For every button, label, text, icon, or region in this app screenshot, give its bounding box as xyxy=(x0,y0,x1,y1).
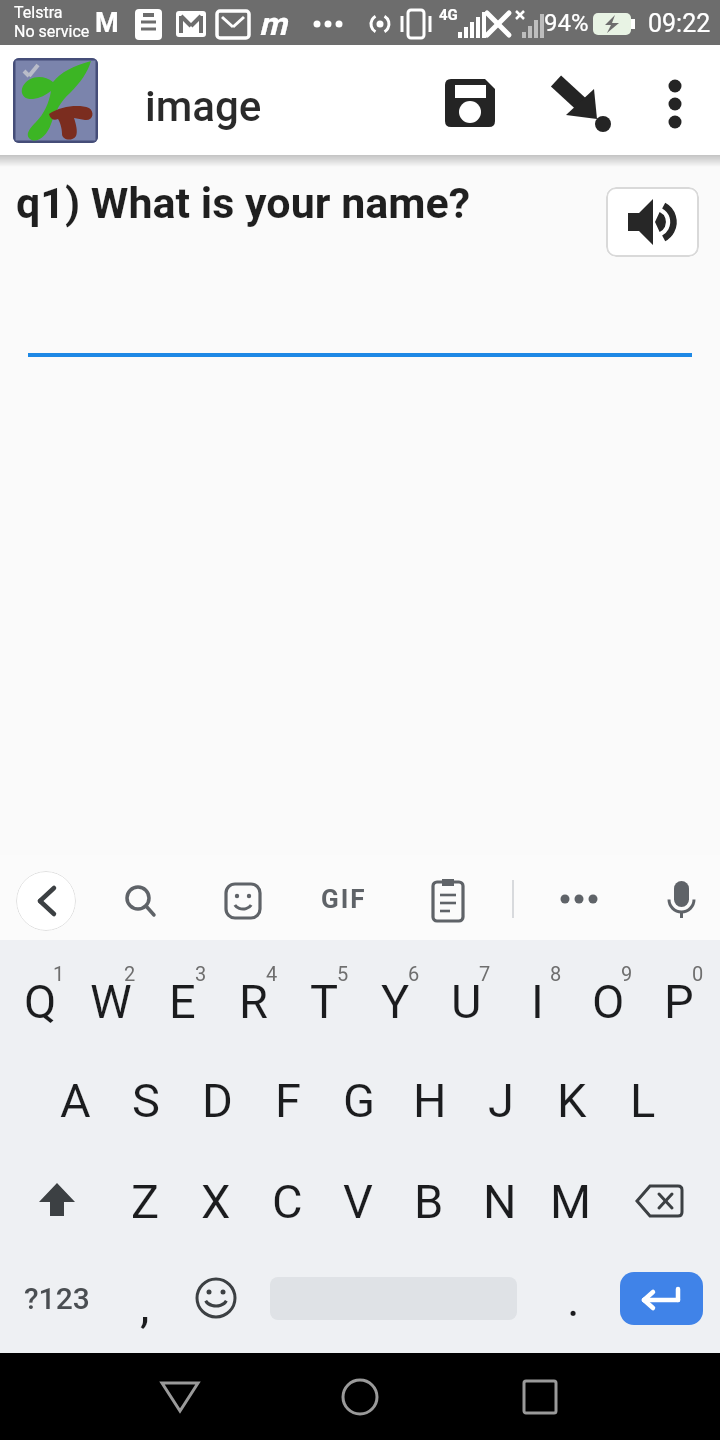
staticText: M xyxy=(550,1174,592,1229)
staticText: P xyxy=(664,974,694,1029)
staticText: ?123 xyxy=(24,1281,90,1316)
staticText: A xyxy=(60,1073,91,1128)
staticText: V xyxy=(343,1174,373,1229)
staticText: m xyxy=(259,5,287,43)
staticText: 4G xyxy=(439,6,458,24)
staticText: 2 xyxy=(124,962,136,985)
staticText: 0 xyxy=(692,962,704,985)
staticText: . xyxy=(567,1271,580,1327)
staticText: Z xyxy=(131,1174,160,1229)
staticText: N xyxy=(483,1174,517,1229)
staticText: H xyxy=(413,1073,447,1128)
staticText: 4 xyxy=(266,962,278,985)
staticText: No service xyxy=(14,22,90,41)
staticText: O xyxy=(592,974,625,1029)
staticText: , xyxy=(140,1277,150,1333)
staticText: Q xyxy=(24,974,57,1029)
staticText: 3 xyxy=(195,962,207,985)
staticText: T xyxy=(310,974,339,1029)
staticText: 8 xyxy=(550,962,562,985)
staticText: 94% xyxy=(544,9,589,37)
staticText: S xyxy=(132,1073,160,1128)
staticText: U xyxy=(451,974,482,1029)
staticText: R xyxy=(239,974,268,1029)
staticText: L xyxy=(630,1073,656,1128)
staticText: q1) What is your name? xyxy=(16,178,471,228)
staticText: X xyxy=(201,1174,231,1229)
staticText: K xyxy=(557,1073,587,1128)
staticText: C xyxy=(272,1174,303,1229)
staticText: M xyxy=(95,7,119,39)
staticText: GIF xyxy=(321,884,367,914)
staticText: image xyxy=(145,82,262,131)
staticText: E xyxy=(169,974,196,1029)
staticText: 9 xyxy=(621,962,633,985)
staticText: 1 xyxy=(53,962,65,985)
staticText: 7 xyxy=(479,962,491,985)
staticText: Y xyxy=(381,974,410,1029)
staticText: G xyxy=(343,1073,376,1128)
staticText: F xyxy=(275,1073,301,1128)
staticText: 6 xyxy=(408,962,420,985)
staticText: 09:22 xyxy=(648,9,711,38)
staticText: B xyxy=(414,1174,444,1229)
staticText: I xyxy=(531,974,544,1029)
staticText: D xyxy=(202,1073,233,1128)
staticText: Telstra xyxy=(14,3,63,22)
staticText: W xyxy=(90,974,132,1029)
staticText: 5 xyxy=(337,962,349,985)
staticText: J xyxy=(488,1073,514,1128)
